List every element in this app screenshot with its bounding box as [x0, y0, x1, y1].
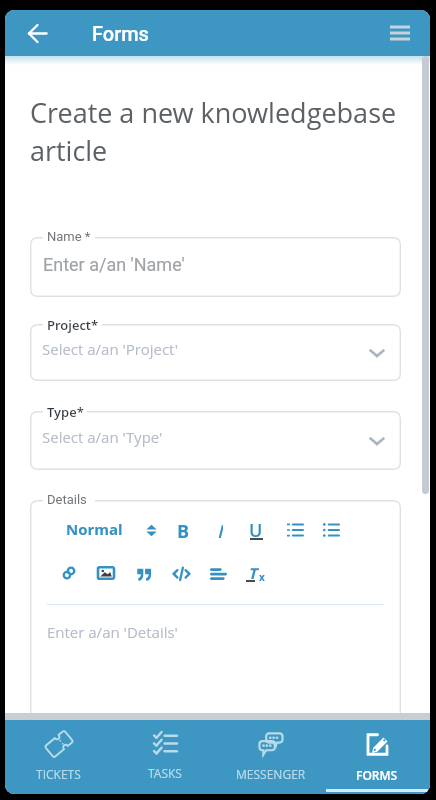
staticText: Enter a/an 'Details': [47, 622, 178, 642]
staticText: T: [248, 563, 257, 583]
button[interactable]: Normal: [66, 519, 123, 539]
button[interactable]: Underline: [245, 519, 267, 541]
staticText: I: [217, 519, 223, 541]
button[interactable]: Clear formatting: [245, 562, 267, 584]
staticText: Type*: [47, 403, 84, 421]
button[interactable]: Bold: [172, 519, 194, 541]
button[interactable]: Align: [207, 562, 229, 584]
staticText: Create a new knowledgebase article: [30, 94, 401, 169]
staticText: Normal: [66, 519, 123, 539]
button[interactable]: TASKS: [112, 720, 218, 794]
button[interactable]: Italic: [209, 519, 231, 541]
button[interactable]: Menu: [380, 13, 420, 53]
button[interactable]: Font size: [140, 519, 162, 541]
button[interactable]: Name *: [30, 237, 401, 297]
button[interactable]: Project*: [30, 324, 401, 381]
staticText: Select a/an 'Type': [42, 427, 163, 447]
button[interactable]: TICKETS: [5, 720, 112, 794]
staticText: TASKS: [148, 765, 182, 781]
staticText: Details: [47, 492, 87, 507]
button[interactable]: Quote: [133, 562, 155, 584]
staticText: x: [259, 570, 265, 584]
button[interactable]: Code: [170, 562, 192, 584]
button[interactable]: Link: [58, 562, 80, 584]
button[interactable]: Numbered list: [284, 519, 306, 541]
button[interactable]: MESSENGER: [218, 720, 324, 794]
button[interactable]: Type*: [30, 411, 401, 470]
staticText: U: [249, 518, 263, 540]
staticText: FORMS: [356, 767, 398, 783]
button[interactable]: FORMS: [324, 720, 430, 794]
staticText: Forms: [92, 22, 149, 45]
staticText: Name *: [47, 229, 91, 244]
button[interactable]: Bulleted list: [320, 519, 342, 541]
button[interactable]: Back: [17, 13, 57, 53]
staticText: B: [177, 519, 190, 541]
staticText: TICKETS: [36, 766, 81, 782]
staticText: Select a/an 'Project': [42, 339, 178, 359]
staticText: Enter a/an 'Name': [43, 254, 185, 275]
button[interactable]: Image: [95, 562, 117, 584]
staticText: MESSENGER: [236, 766, 306, 782]
staticText: Project*: [47, 316, 99, 334]
